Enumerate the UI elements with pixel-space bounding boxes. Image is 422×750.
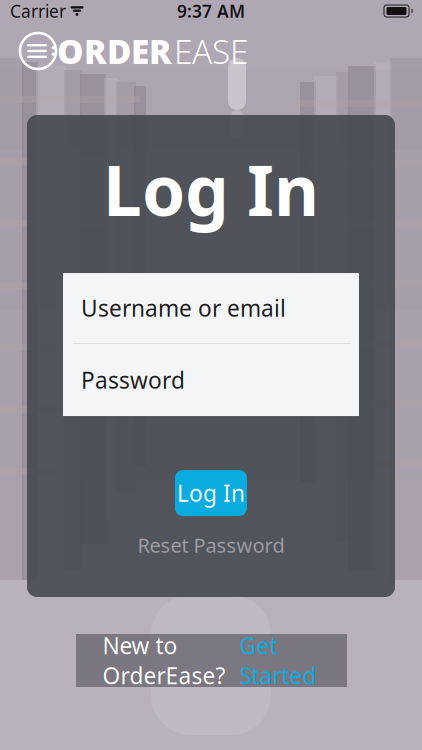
staticText: EASE <box>174 29 248 73</box>
staticText: Reset Password <box>137 532 284 558</box>
staticText: Log In <box>177 478 245 508</box>
button[interactable]: Get Started <box>225 634 320 687</box>
staticText: 9:37 AM <box>177 0 245 22</box>
button[interactable]: Reset Password <box>131 530 291 560</box>
staticText: Log In <box>103 143 319 235</box>
staticText: Get Started <box>239 630 316 691</box>
button[interactable]: Username or email <box>63 273 359 343</box>
staticText: New to OrderEase? <box>102 630 225 691</box>
staticText: Carrier <box>10 0 66 22</box>
button[interactable]: Password <box>63 344 359 416</box>
button[interactable]: Log In <box>175 470 247 516</box>
staticText: ORDER <box>57 29 172 73</box>
staticText: Password <box>81 365 185 395</box>
staticText: Username or email <box>81 293 286 323</box>
